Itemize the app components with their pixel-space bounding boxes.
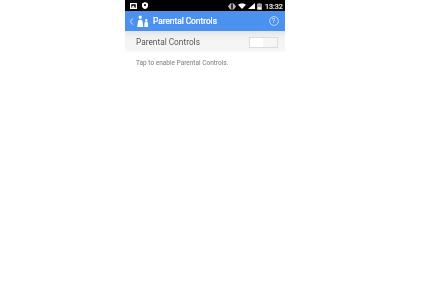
staticText: 13:32 — [265, 2, 283, 10]
staticText: Parental Controls — [153, 16, 217, 26]
staticText: ? — [272, 17, 276, 25]
button[interactable]: Parental Controls — [125, 31, 285, 52]
staticText: Tap to enable Parental Controls. — [136, 59, 229, 67]
button[interactable]: Parental Controls off — [249, 37, 278, 48]
staticText: Parental Controls — [136, 37, 200, 47]
button[interactable]: Back — [125, 11, 137, 31]
button[interactable]: Help — [265, 11, 283, 31]
